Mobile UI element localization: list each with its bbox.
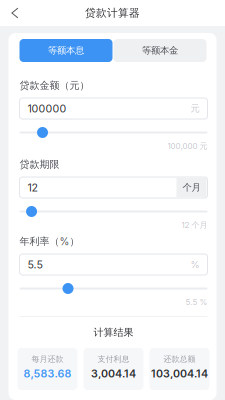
staticText: 100000 — [27, 102, 66, 115]
staticText: 计算结果 — [93, 326, 133, 339]
staticText: 5.5 % — [185, 297, 207, 307]
staticText: 每月还款 — [31, 354, 63, 364]
staticText: 12 — [27, 181, 38, 194]
staticText: 等额本息 — [48, 45, 84, 56]
staticText: 还款总额 — [163, 354, 195, 364]
staticText: 8,583.68 — [23, 367, 71, 380]
button[interactable]: 返回 — [0, 0, 30, 26]
staticText: 100,000 元 — [167, 141, 207, 151]
staticText: 元 — [190, 103, 199, 114]
staticText: 3,004.14 — [91, 367, 136, 380]
staticText: 贷款计算器 — [85, 6, 140, 20]
staticText: 贷款金额（元） — [19, 79, 89, 92]
staticText: 等额本金 — [142, 45, 178, 56]
staticText: 12 个月 — [181, 220, 207, 230]
staticText: 支付利息 — [97, 354, 129, 364]
staticText: 5.5 — [27, 258, 42, 271]
staticText: 个月 — [182, 182, 200, 193]
staticText: % — [190, 259, 199, 270]
staticText: 年利率（%） — [19, 235, 79, 248]
staticText: 贷款期限 — [19, 158, 59, 171]
button[interactable]: 等额本金 — [113, 39, 206, 62]
staticText: 103,004.14 — [151, 367, 208, 380]
button[interactable]: 等额本息 — [19, 39, 112, 62]
